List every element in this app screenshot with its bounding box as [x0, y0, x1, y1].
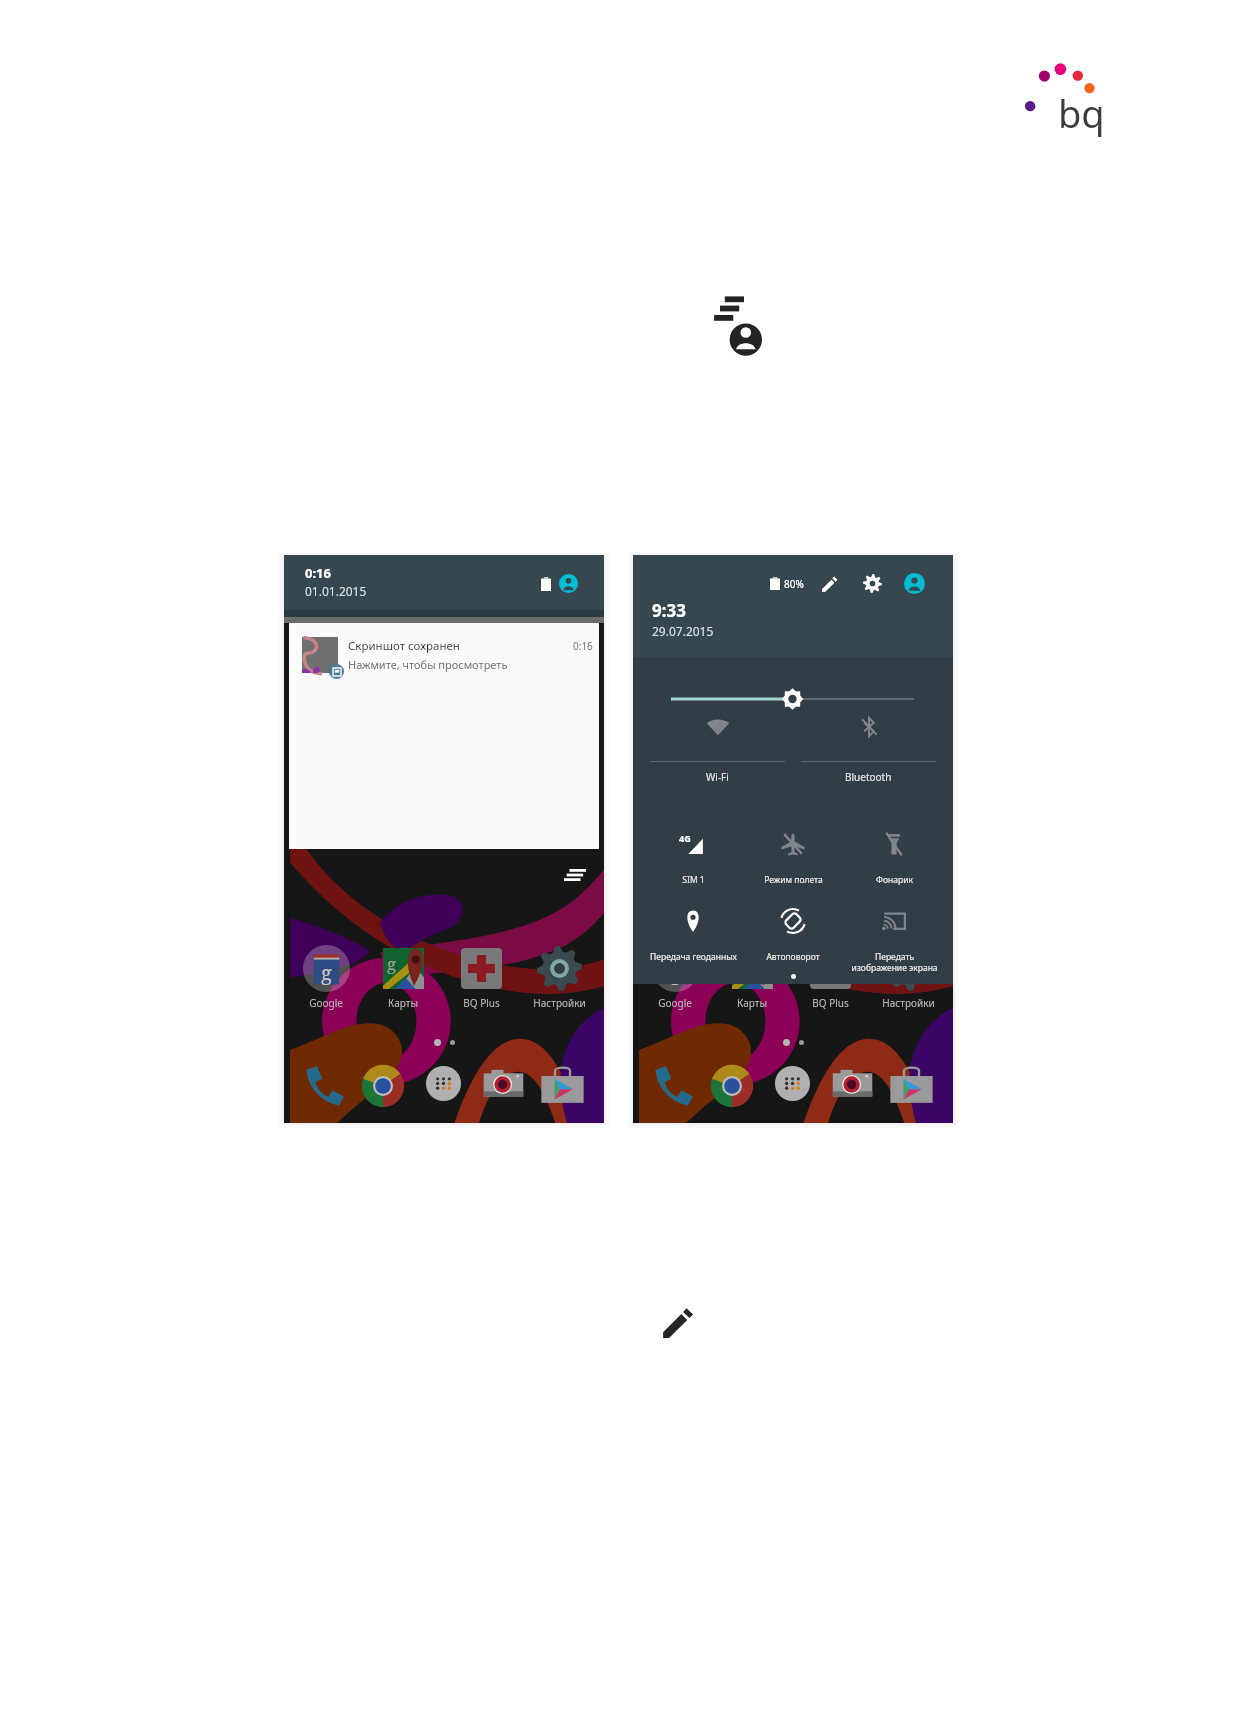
staticText: BQ Plus [812, 996, 849, 1010]
button[interactable]: 4G [643, 831, 743, 886]
button[interactable]: g [287, 944, 365, 1010]
staticText: bq [1058, 87, 1105, 139]
staticText: BQ Plus [463, 996, 500, 1010]
button[interactable]: Chrome [360, 1063, 406, 1109]
staticText: Нажмите, чтобы просмотреть [348, 657, 508, 672]
button[interactable]: Фонарик [844, 831, 944, 886]
staticText: 4G [679, 832, 691, 844]
button[interactable]: Автоповорот [743, 908, 843, 963]
button[interactable]: All apps [424, 1064, 463, 1103]
button[interactable]: Передача геоданных [643, 908, 743, 963]
button[interactable]: BQ Plus [791, 944, 869, 1010]
staticText: Фонарик [876, 874, 913, 886]
button[interactable]: g [636, 944, 714, 1010]
staticText: Скриншот сохранен [348, 638, 460, 654]
button[interactable]: Настройки [520, 944, 598, 1010]
button[interactable]: Скриншот сохранен [289, 623, 599, 849]
staticText: Настройки [882, 996, 935, 1010]
button[interactable]: Bluetooth [796, 715, 941, 784]
staticText: Wi-Fi [706, 770, 729, 784]
button[interactable]: Camera [831, 1063, 874, 1106]
button[interactable]: Edit [821, 575, 839, 593]
staticText: g [736, 952, 746, 975]
staticText: Bluetooth [845, 770, 892, 784]
staticText: Настройки [533, 996, 586, 1010]
button[interactable]: User profile [559, 574, 578, 593]
button[interactable]: Camera [482, 1063, 525, 1106]
button[interactable]: Clear all notifications [564, 869, 586, 881]
staticText: 01.01.2015 [305, 583, 367, 599]
button[interactable]: All apps [773, 1064, 812, 1103]
button[interactable]: Режим полета [743, 831, 843, 886]
button[interactable]: Phone [302, 1063, 346, 1107]
button[interactable]: Play Store [888, 1061, 935, 1108]
staticText: SIM 1 [682, 874, 705, 886]
button[interactable]: User profile [904, 573, 925, 594]
staticText: 0:16 [573, 639, 593, 653]
staticText: Google [658, 996, 692, 1010]
button[interactable]: Chrome [709, 1063, 755, 1109]
staticText: 29.07.2015 [652, 623, 714, 639]
staticText: g [321, 959, 332, 986]
staticText: Режим полета [764, 874, 823, 886]
staticText: Передача геоданных [650, 951, 737, 963]
staticText: Карты [388, 996, 418, 1010]
staticText: Google [309, 996, 343, 1010]
staticText: 9:33 [652, 599, 686, 622]
button[interactable]: Передать изображение экрана [844, 908, 944, 973]
staticText: Карты [737, 996, 767, 1010]
staticText: 0:16 [305, 564, 331, 582]
button[interactable]: BQ Plus [442, 944, 520, 1010]
staticText: Передать изображение экрана [851, 951, 938, 973]
button[interactable]: g [713, 944, 791, 1010]
button[interactable]: g [364, 944, 442, 1010]
staticText: g [670, 959, 681, 986]
button[interactable]: Настройки [869, 944, 947, 1010]
staticText: Автоповорот [766, 951, 820, 963]
button[interactable]: Settings [863, 574, 882, 593]
staticText: g [387, 952, 397, 975]
button[interactable]: Play Store [539, 1061, 586, 1108]
staticText: 80% [784, 577, 804, 591]
button[interactable]: Wi-Fi [645, 715, 790, 784]
button[interactable]: Phone [651, 1063, 695, 1107]
